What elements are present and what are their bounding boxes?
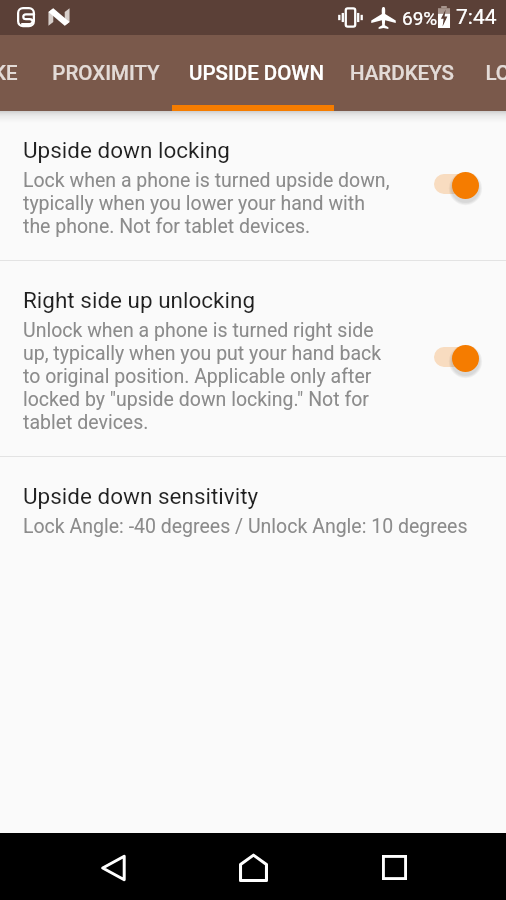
button[interactable]: PROXIMITY — [52, 38, 160, 108]
button[interactable] — [435, 340, 483, 374]
staticText: 7:44 — [456, 5, 497, 30]
staticText: Right side up unlocking — [23, 287, 256, 313]
staticText: UPSIDE DOWN — [189, 61, 324, 85]
staticText: Lock Angle: -40 degrees / Unlock Angle: … — [23, 515, 468, 538]
button[interactable]: Upside down locking — [0, 111, 506, 260]
staticText: Upside down sensitivity — [23, 483, 259, 509]
button[interactable]: LOCATION — [485, 38, 506, 108]
staticText: Upside down locking — [23, 137, 230, 163]
staticText: Lock when a phone is turned upside down,… — [23, 169, 396, 238]
staticText: Unlock when a phone is turned right side… — [23, 319, 396, 434]
button[interactable]: SHAKE — [0, 38, 18, 108]
button[interactable]: Right side up unlocking — [0, 261, 506, 456]
button[interactable]: Home — [213, 833, 294, 900]
button[interactable]: Upside down sensitivity — [0, 457, 506, 560]
staticText: SHAKE — [0, 61, 18, 85]
staticText: 69% — [402, 7, 438, 29]
staticText: PROXIMITY — [52, 61, 160, 85]
button[interactable]: Recent apps — [354, 833, 435, 900]
staticText: LOCATION — [485, 61, 506, 85]
button[interactable]: HARDKEYS — [350, 38, 454, 108]
staticText: HARDKEYS — [350, 61, 454, 85]
button[interactable] — [435, 167, 483, 201]
button[interactable]: UPSIDE DOWN — [189, 38, 324, 108]
button[interactable]: Back — [72, 833, 153, 900]
